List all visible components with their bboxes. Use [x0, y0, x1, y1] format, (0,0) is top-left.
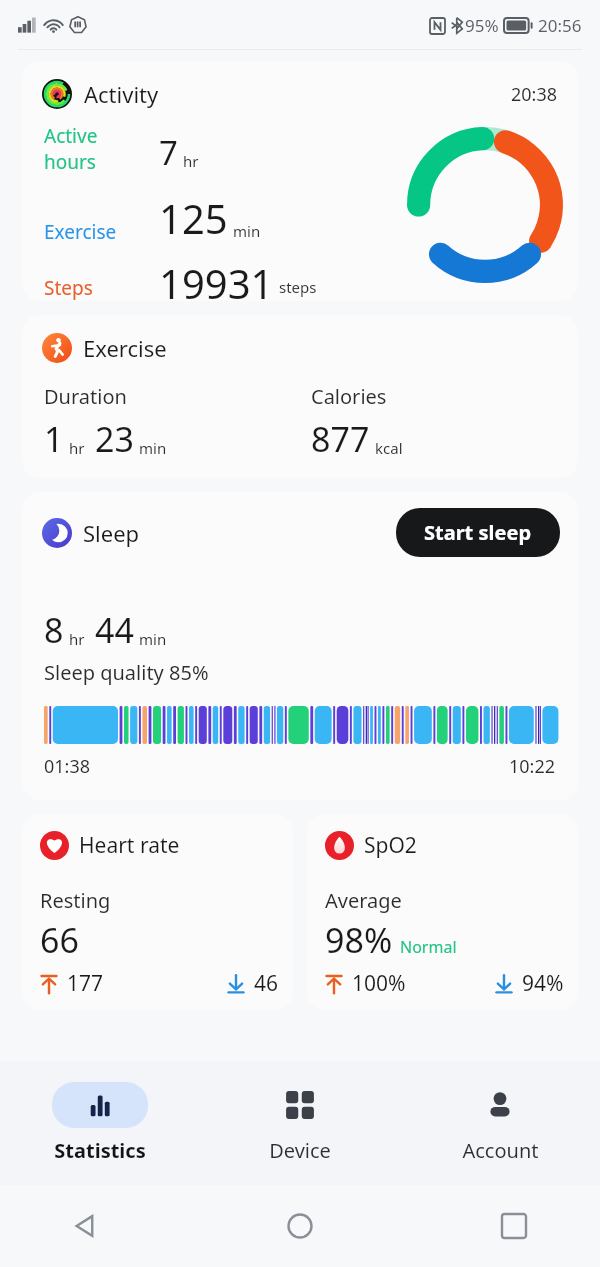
staticText: Duration	[44, 383, 127, 410]
staticText: Activity	[84, 79, 159, 109]
staticText: 44	[95, 607, 134, 653]
button[interactable]: Account	[400, 1061, 600, 1185]
staticText: 10:22	[509, 754, 556, 779]
staticText: 8	[44, 607, 64, 653]
staticText: Active hours	[44, 123, 147, 175]
staticText: Normal	[400, 936, 457, 958]
staticText: 125	[159, 191, 228, 245]
staticText: Sleep	[83, 518, 140, 548]
button[interactable]: Statistics	[0, 1061, 200, 1185]
staticText: Sleep quality 85%	[44, 659, 209, 686]
staticText: 7	[159, 130, 178, 175]
staticText: 94%	[522, 969, 564, 998]
button[interactable]: Device	[200, 1061, 400, 1185]
staticText: min	[139, 629, 167, 649]
staticText: min	[139, 438, 167, 458]
button[interactable]: Recents	[488, 1200, 540, 1252]
staticText: Device	[269, 1137, 331, 1164]
staticText: 20:56	[538, 14, 582, 37]
staticText: 100%	[352, 969, 406, 998]
staticText: hr	[69, 438, 85, 458]
staticText: hr	[69, 629, 85, 649]
staticText: Resting	[40, 887, 111, 914]
staticText: Heart rate	[79, 831, 180, 860]
staticText: 877	[311, 416, 370, 462]
staticText: Exercise	[44, 219, 117, 245]
staticText: 19931	[159, 256, 274, 301]
staticText: Account	[462, 1137, 539, 1164]
staticText: 66	[40, 917, 79, 963]
button[interactable]: Start sleep	[396, 508, 560, 557]
staticText: 1	[44, 416, 64, 462]
staticText: hr	[183, 151, 199, 171]
staticText: Average	[325, 887, 402, 914]
staticText: 01:38	[44, 754, 91, 779]
button[interactable]: Exercise	[22, 315, 578, 478]
button[interactable]: Sleep	[22, 492, 578, 800]
staticText: Steps	[44, 275, 93, 301]
button[interactable]: Activity	[22, 61, 578, 301]
button[interactable]: Home	[274, 1200, 326, 1252]
staticText: steps	[279, 277, 317, 297]
button[interactable]: Heart rate	[22, 814, 293, 1010]
button[interactable]: SpO2	[307, 814, 578, 1010]
staticText: Exercise	[83, 333, 167, 363]
staticText: kcal	[375, 438, 403, 458]
staticText: 98%	[325, 917, 393, 963]
staticText: 177	[67, 969, 104, 998]
staticText: Calories	[311, 383, 387, 410]
staticText: 23	[95, 416, 134, 462]
staticText: Statistics	[54, 1137, 146, 1164]
staticText: min	[233, 221, 261, 241]
staticText: Start sleep	[424, 519, 532, 546]
staticText: 20:38	[511, 82, 558, 107]
staticText: 46	[254, 969, 279, 998]
staticText: SpO2	[364, 831, 417, 860]
staticText: 95%	[465, 14, 499, 37]
button[interactable]: Back	[60, 1200, 112, 1252]
